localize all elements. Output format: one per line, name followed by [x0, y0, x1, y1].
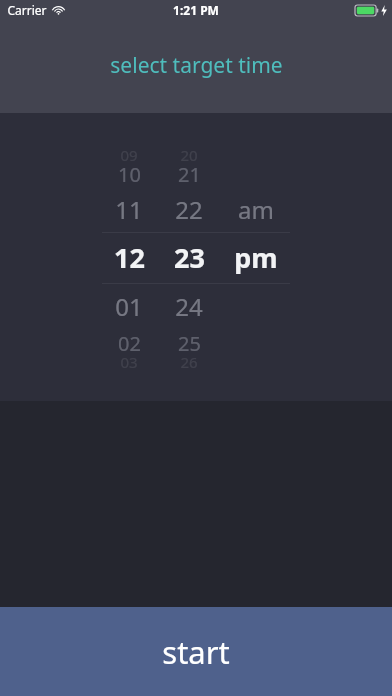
- staticText: 1:21 PM: [173, 2, 219, 18]
- staticText: 09: [120, 145, 138, 165]
- staticText: 12: [114, 239, 145, 276]
- staticText: 11: [115, 193, 143, 226]
- staticText: 26: [180, 352, 198, 372]
- staticText: 22: [175, 193, 203, 226]
- staticText: 20: [180, 145, 198, 165]
- staticText: am: [238, 193, 274, 226]
- button[interactable]: 10: [0, 158, 392, 190]
- staticText: 02: [118, 330, 141, 357]
- staticText: 24: [175, 290, 203, 323]
- staticText: 01: [115, 290, 143, 323]
- staticText: 10: [118, 161, 141, 188]
- staticText: 21: [178, 161, 201, 188]
- staticText: 23: [174, 239, 205, 276]
- button[interactable]: 02: [0, 327, 392, 359]
- staticText: select target time: [110, 51, 283, 80]
- staticText: pm: [234, 239, 278, 276]
- button[interactable]: 11: [0, 190, 392, 228]
- staticText: start: [162, 631, 230, 673]
- button[interactable]: 03: [0, 350, 392, 374]
- button[interactable]: 01: [0, 287, 392, 325]
- staticText: Carrier: [7, 2, 47, 18]
- staticText: 03: [120, 352, 138, 372]
- button[interactable]: start: [0, 607, 392, 696]
- staticText: 25: [178, 330, 201, 357]
- button[interactable]: 12: [0, 236, 392, 279]
